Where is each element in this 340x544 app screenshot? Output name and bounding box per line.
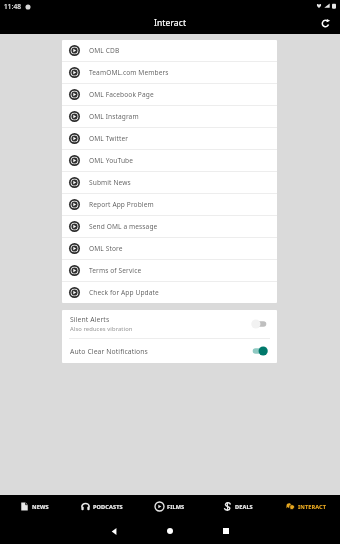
button[interactable]: DEALS xyxy=(204,495,272,518)
staticText: 11:48 xyxy=(4,2,22,11)
button[interactable]: Report App Problem xyxy=(62,194,277,215)
staticText: Terms of Service xyxy=(89,266,142,275)
button[interactable]: OML CDB xyxy=(62,40,277,61)
button[interactable]: Back xyxy=(95,521,133,541)
button[interactable]: Terms of Service xyxy=(62,260,277,281)
staticText: OML YouTube xyxy=(89,156,134,165)
button[interactable]: Auto Clear Notifications xyxy=(62,339,277,363)
button[interactable]: TeamOML.com Members xyxy=(62,62,277,83)
staticText: PODCASTS xyxy=(93,503,123,511)
button[interactable]: OML YouTube xyxy=(62,150,277,171)
button[interactable]: Check for App Update xyxy=(62,282,277,303)
staticText: TeamOML.com Members xyxy=(89,68,169,77)
staticText: OML Instagram xyxy=(89,112,139,121)
button[interactable]: Recent apps xyxy=(207,521,245,541)
button[interactable]: INTERACT xyxy=(272,495,340,518)
button[interactable]: PODCASTS xyxy=(68,495,136,518)
staticText: DEALS xyxy=(235,503,253,511)
staticText: Interact xyxy=(154,17,187,29)
button[interactable]: OML Twitter xyxy=(62,128,277,149)
staticText: NEWS xyxy=(32,503,49,511)
staticText: OML CDB xyxy=(89,46,120,55)
staticText: Silent Alerts xyxy=(70,315,110,324)
button[interactable]: OML Store xyxy=(62,238,277,259)
button[interactable]: Silent Alerts xyxy=(62,310,277,338)
staticText: OML Facebook Page xyxy=(89,90,154,99)
button[interactable]: Submit News xyxy=(62,172,277,193)
button[interactable]: FILMS xyxy=(136,495,204,518)
staticText: Submit News xyxy=(89,178,131,187)
button[interactable]: Refresh xyxy=(317,15,333,31)
staticText: INTERACT xyxy=(298,503,327,511)
button[interactable]: Toggle on xyxy=(249,345,269,357)
button[interactable]: OML Facebook Page xyxy=(62,84,277,105)
staticText: Also reduces vibration xyxy=(70,325,133,333)
staticText: OML Store xyxy=(89,244,123,253)
button[interactable]: NEWS xyxy=(0,495,68,518)
button[interactable]: Home xyxy=(151,521,189,541)
staticText: Report App Problem xyxy=(89,200,154,209)
staticText: Send OML a message xyxy=(89,222,158,231)
button[interactable]: Send OML a message xyxy=(62,216,277,237)
staticText: Auto Clear Notifications xyxy=(70,347,249,356)
staticText: FILMS xyxy=(167,503,185,511)
button[interactable]: Toggle off xyxy=(249,318,269,330)
staticText: OML Twitter xyxy=(89,134,129,143)
staticText: Check for App Update xyxy=(89,288,159,297)
button[interactable]: OML Instagram xyxy=(62,106,277,127)
